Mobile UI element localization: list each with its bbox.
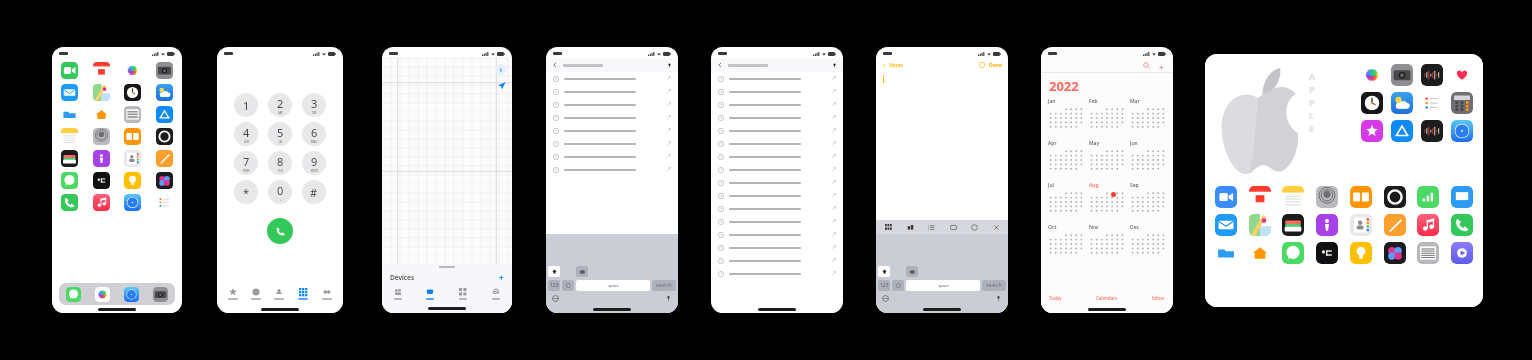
button[interactable]: Today xyxy=(1049,295,1062,301)
button[interactable]: Globe xyxy=(552,295,559,302)
button[interactable] xyxy=(718,215,836,228)
button[interactable]: 1 xyxy=(234,93,258,117)
button[interactable]: contacts xyxy=(1350,214,1372,236)
button[interactable] xyxy=(718,124,836,137)
button[interactable]: dark xyxy=(156,128,173,145)
button[interactable]: voicememo xyxy=(1421,120,1443,142)
button[interactable]: tips xyxy=(1350,242,1372,264)
button[interactable]: Format 1 xyxy=(906,223,914,231)
button[interactable] xyxy=(553,124,671,137)
button[interactable]: Backspace xyxy=(906,266,918,277)
button[interactable]: keynote xyxy=(1451,186,1473,208)
button[interactable] xyxy=(382,288,414,300)
button[interactable] xyxy=(221,288,244,300)
button[interactable]: shortcuts xyxy=(1384,242,1406,264)
button[interactable]: 8 xyxy=(268,151,292,175)
button[interactable]: files xyxy=(61,106,78,123)
button[interactable]: voicememo xyxy=(1421,64,1443,86)
button[interactable]: Back xyxy=(552,62,558,68)
button[interactable] xyxy=(553,98,671,111)
button[interactable]: podcasts xyxy=(93,128,110,145)
button[interactable]: 123 xyxy=(878,280,890,291)
button[interactable]: podcast2 xyxy=(93,150,110,167)
button[interactable]: phone xyxy=(61,194,78,211)
button[interactable]: space xyxy=(906,280,980,291)
button[interactable]: clock xyxy=(124,84,141,101)
button[interactable]: Format 5 xyxy=(992,223,1000,231)
button[interactable]: 6 xyxy=(302,122,326,146)
button[interactable]: books xyxy=(124,128,141,145)
button[interactable]: Compose xyxy=(979,62,985,68)
button[interactable] xyxy=(553,150,671,163)
button[interactable]: home xyxy=(93,106,110,123)
button[interactable]: reminders xyxy=(156,194,173,211)
button[interactable]: camera xyxy=(1391,64,1413,86)
button[interactable]: phone xyxy=(1451,214,1473,236)
button[interactable]: music xyxy=(93,194,110,211)
button[interactable]: dark xyxy=(1384,186,1406,208)
button[interactable]: maps xyxy=(1249,214,1271,236)
button[interactable]: news xyxy=(124,106,141,123)
button[interactable]: shortcuts xyxy=(156,172,173,189)
button[interactable]: Done xyxy=(989,62,1002,69)
button[interactable]: search xyxy=(652,280,676,291)
button[interactable] xyxy=(718,150,836,163)
button[interactable]: Locate xyxy=(497,81,506,90)
button[interactable] xyxy=(718,241,836,254)
button[interactable] xyxy=(291,288,315,300)
button[interactable]: calendar xyxy=(93,62,110,79)
button[interactable]: camera xyxy=(156,62,173,79)
button[interactable] xyxy=(718,254,836,267)
button[interactable]: purple xyxy=(1451,242,1473,264)
button[interactable]: wallet xyxy=(1282,214,1304,236)
button[interactable]: numbers xyxy=(1417,186,1439,208)
button[interactable]: Shift xyxy=(548,266,560,277)
button[interactable]: search xyxy=(982,280,1006,291)
button[interactable]: files xyxy=(1215,242,1237,264)
button[interactable]: Voice search xyxy=(667,63,672,68)
button[interactable]: books xyxy=(1350,186,1372,208)
button[interactable] xyxy=(718,202,836,215)
button[interactable] xyxy=(718,189,836,202)
button[interactable]: Back xyxy=(717,62,723,68)
button[interactable] xyxy=(718,228,836,241)
button[interactable]: itunes xyxy=(1361,120,1383,142)
button[interactable] xyxy=(553,85,671,98)
button[interactable]: Info xyxy=(495,64,506,75)
button[interactable]: Dictation xyxy=(665,295,672,302)
button[interactable]: 5 xyxy=(268,122,292,146)
button[interactable]: ftblue xyxy=(1215,186,1237,208)
button[interactable]: Format 2 xyxy=(927,223,935,231)
button[interactable] xyxy=(718,163,836,176)
button[interactable]: contacts xyxy=(124,150,141,167)
button[interactable]: podcast2 xyxy=(1316,214,1338,236)
button[interactable]: 7 xyxy=(234,151,258,175)
button[interactable]: notes xyxy=(61,128,78,145)
button[interactable]: messages xyxy=(66,287,81,302)
button[interactable] xyxy=(718,72,836,85)
button[interactable]: Format 4 xyxy=(970,223,978,231)
button[interactable] xyxy=(718,137,836,150)
button[interactable]: weather xyxy=(1391,92,1413,114)
button[interactable]: Format 0 xyxy=(884,223,892,231)
button[interactable]: safari xyxy=(1451,120,1473,142)
button[interactable] xyxy=(553,111,671,124)
button[interactable]: photos xyxy=(95,287,110,302)
button[interactable] xyxy=(315,288,339,300)
button[interactable]: safari xyxy=(124,287,139,302)
button[interactable]: * xyxy=(234,180,258,204)
button[interactable] xyxy=(267,288,291,300)
button[interactable]: appstore xyxy=(1391,120,1413,142)
button[interactable]: Calendars xyxy=(1096,295,1118,301)
button[interactable] xyxy=(553,137,671,150)
button[interactable]: Devices xyxy=(390,270,504,284)
button[interactable]: facetime xyxy=(61,62,78,79)
button[interactable]: 3 xyxy=(302,93,326,117)
button[interactable]: mail xyxy=(1215,214,1237,236)
button[interactable]: pages xyxy=(1384,214,1406,236)
button[interactable] xyxy=(446,288,479,300)
button[interactable] xyxy=(718,267,836,280)
button[interactable]: Inbox xyxy=(1152,295,1165,301)
button[interactable]: pages xyxy=(156,150,173,167)
button[interactable]: Search xyxy=(1143,62,1150,69)
